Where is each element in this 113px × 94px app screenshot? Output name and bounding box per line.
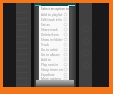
button[interactable]: Equalizer preset [39, 72, 69, 77]
staticText: Sleep timer on [41, 68, 63, 72]
staticText: Set as ringtone [41, 23, 63, 27]
staticText: Go to artist page [41, 48, 63, 52]
button[interactable]: Set as ringtone [39, 22, 69, 27]
button[interactable]: Add to favourites [39, 57, 69, 62]
button[interactable]: Add to playlist [39, 12, 69, 17]
button[interactable]: Go to album page [39, 52, 69, 57]
button[interactable]: Sleep timer on [39, 67, 69, 72]
button[interactable]: Play next in queue [39, 62, 69, 67]
staticText: Delete from disk [41, 33, 63, 37]
button[interactable]: More options here [39, 77, 69, 80]
button[interactable]: Delete from disk [39, 32, 69, 37]
button[interactable]: Show in folder [39, 37, 69, 42]
button[interactable]: Track properties [39, 42, 69, 47]
staticText: Go to album page [41, 53, 63, 57]
staticText: Track properties [41, 43, 63, 47]
staticText: Share track now [41, 28, 63, 32]
button[interactable]: Go to artist page [39, 47, 69, 52]
staticText: Edit track info [41, 18, 63, 22]
staticText: Equalizer preset [41, 73, 63, 77]
staticText: Add to playlist [41, 13, 63, 17]
staticText: Play next in queue [41, 63, 63, 67]
staticText: More options here [41, 77, 63, 80]
staticText: Add to favourites [41, 58, 63, 62]
staticText: Select an option to continue [41, 7, 69, 11]
button[interactable]: Edit track info [39, 17, 69, 22]
staticText: Show in folder [41, 38, 63, 42]
button[interactable]: Share track now [39, 27, 69, 32]
